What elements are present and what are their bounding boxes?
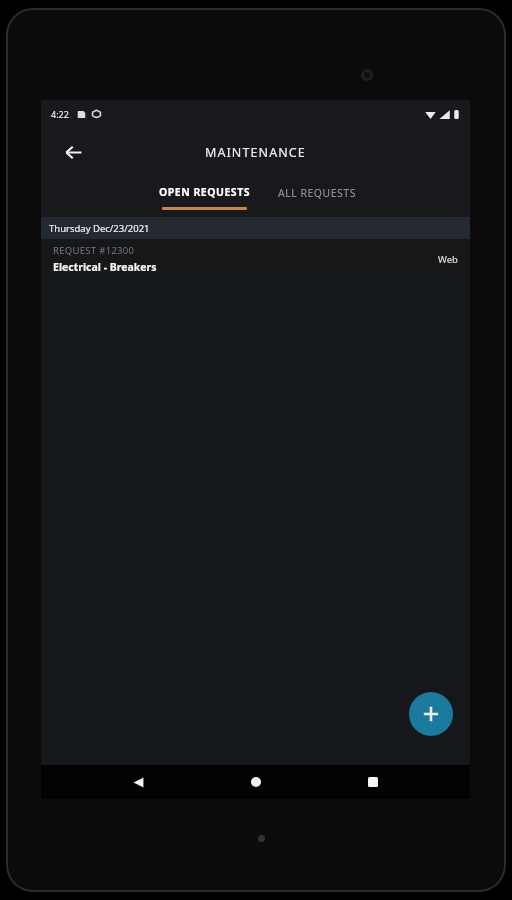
button[interactable]: Add request [409,692,453,736]
staticText: OPEN REQUESTS [159,185,250,199]
button[interactable]: Home [236,765,276,799]
staticText: ALL REQUESTS [278,186,356,200]
staticText: Web [438,253,458,266]
staticText: Electrical - Breakers [53,260,157,274]
button[interactable]: Recent apps [353,765,393,799]
button[interactable]: REQUEST #12300 [41,239,470,279]
staticText: MAINTENANCE [205,144,306,161]
button[interactable]: OPEN REQUESTS [149,176,260,217]
staticText: Thursday Dec/23/2021 [49,222,150,235]
staticText: REQUEST #12300 [53,244,135,257]
button[interactable]: ALL REQUESTS [278,176,356,217]
staticText: 4:22 [51,108,69,120]
button[interactable]: Back [55,134,91,170]
button[interactable]: Back [118,765,158,799]
